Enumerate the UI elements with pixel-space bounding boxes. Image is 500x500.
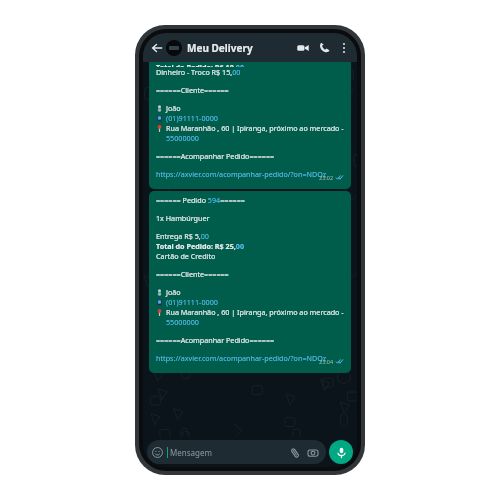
staticText: ======Cliente====== [156,85,229,95]
button[interactable]: Voice message [329,440,353,464]
staticText: Rua Maranhão , 60 | Ipiranga, próximo ao… [166,123,344,143]
staticText: Dinheiro - Troco R$ 15,00 [156,67,241,77]
button[interactable]: Attach [288,446,301,459]
button[interactable]: Emoji [147,440,326,464]
staticText: 23:02 [319,174,334,181]
staticText: (01)91111-0000 [166,113,218,123]
staticText: 23:04 [319,358,334,365]
staticText: https://axvier.com/acompanhar-pedido/?on… [156,169,327,179]
button[interactable]: Video call [293,38,312,57]
button[interactable]: ====== Pedido 594====== [149,191,351,373]
staticText: João [166,287,181,297]
staticText: Total do Pedido: R$ 25,00 [156,241,245,251]
staticText: ======Cliente====== [156,269,229,279]
button[interactable]: Meu Delivery [187,41,253,55]
staticText: (01)91111-0000 [166,297,218,307]
staticText: Cartão de Credito [156,251,216,261]
button[interactable]: Total do Pedido: R$ 10,00 [149,62,351,189]
button[interactable]: Camera [306,446,319,459]
staticText: Rua Maranhão , 60 | Ipiranga, próximo ao… [166,307,344,327]
staticText: ======Acompanhar Pedido====== [156,335,275,345]
button[interactable]: Profile photo [166,40,182,56]
button[interactable]: https://axvier.com/acompanhar-pedido/?on… [156,353,344,363]
button[interactable]: Back [148,39,166,57]
button[interactable]: More options [335,39,352,56]
staticText: João [166,103,181,113]
staticText: 1x Hambúrguer [156,213,210,223]
staticText: Entrega R$ 5,00 [156,231,209,241]
staticText: ====== Pedido 594====== [156,195,245,205]
staticText: Total do Pedido: R$ 10,00 [156,62,245,67]
staticText: ======Acompanhar Pedido====== [156,151,275,161]
button[interactable]: Call [315,38,334,57]
other: Emoji [152,447,163,458]
staticText: https://axvier.com/acompanhar-pedido/?on… [156,353,327,363]
staticText: Mensagem [170,447,212,458]
button[interactable]: https://axvier.com/acompanhar-pedido/?on… [156,169,344,179]
